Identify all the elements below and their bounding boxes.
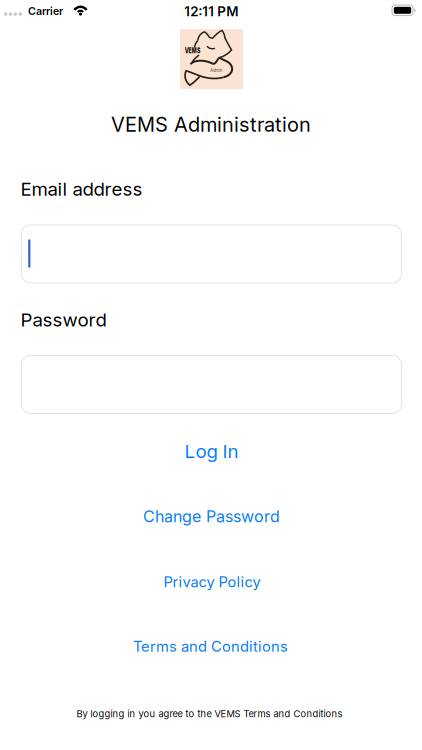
staticText: Email address [20,178,142,200]
staticText: Carrier [28,5,63,17]
staticText: VEMS Administration [111,113,311,136]
staticText: Change Password [143,507,280,526]
button[interactable]: Password [21,355,401,413]
staticText: Admin [208,67,224,73]
button[interactable]: Log In [184,440,238,462]
staticText: VEMS [180,46,204,55]
staticText: Log In [184,440,238,462]
staticText: Password [20,309,106,331]
button[interactable]: Change Password [143,507,280,526]
button[interactable]: Email address [21,225,401,283]
staticText: Terms and Conditions [133,638,288,655]
staticText: 12:11 PM [184,3,238,19]
button[interactable]: Terms and Conditions [133,638,288,655]
staticText: By logging in you agree to the VEMS Term… [76,708,342,719]
button[interactable]: Privacy Policy [163,573,260,591]
staticText: Privacy Policy [163,573,260,591]
